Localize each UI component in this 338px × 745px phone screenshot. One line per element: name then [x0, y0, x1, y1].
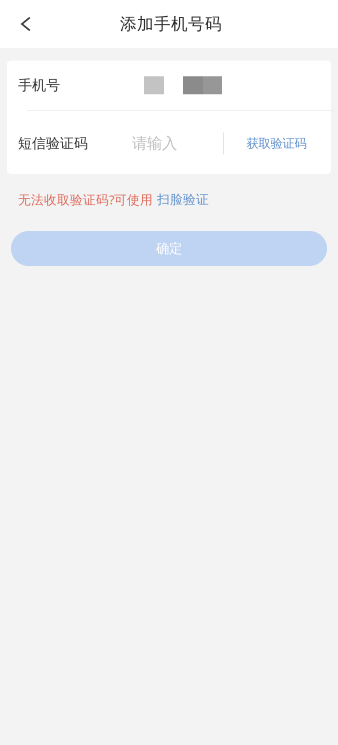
staticText: 添加手机号码: [120, 14, 222, 34]
button[interactable]: 确定: [11, 231, 327, 266]
staticText: 获取验证码: [246, 136, 306, 151]
staticText: 请输入: [132, 134, 177, 153]
button[interactable]: 扫脸验证: [157, 191, 209, 207]
staticText: 短信验证码: [18, 135, 88, 152]
staticText: 确定: [156, 240, 182, 257]
staticText: 无法收取验证码?可使用: [18, 191, 157, 208]
staticText: 扫脸验证: [157, 191, 209, 207]
button[interactable]: Back: [0, 0, 52, 48]
button[interactable]: 获取验证码: [224, 119, 329, 167]
staticText: 手机号: [18, 76, 60, 94]
